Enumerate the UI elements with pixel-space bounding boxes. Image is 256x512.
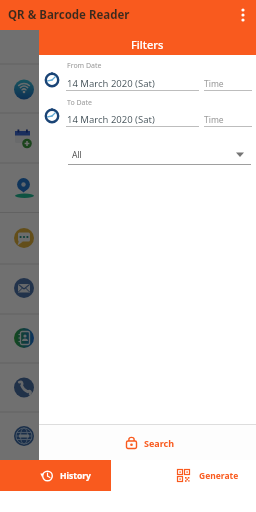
button[interactable]: Search xyxy=(39,425,256,460)
staticText: QR & Barcode Reader xyxy=(8,7,130,23)
button[interactable]: 14 March 2020 (Sat) xyxy=(67,77,155,90)
button[interactable]: All xyxy=(68,143,251,165)
button[interactable]: Generate xyxy=(111,460,256,491)
button[interactable] xyxy=(44,72,60,88)
button[interactable]: Time xyxy=(204,78,224,90)
button[interactable] xyxy=(44,108,60,124)
button[interactable]: Time xyxy=(204,114,224,126)
button[interactable]: 14 March 2020 (Sat) xyxy=(67,113,155,126)
staticText: Filters xyxy=(131,37,164,52)
staticText: To Date xyxy=(67,98,92,108)
button[interactable]: History xyxy=(0,460,111,491)
button[interactable] xyxy=(241,8,245,22)
staticText: Search xyxy=(144,437,175,449)
staticText: From Date xyxy=(67,61,102,71)
staticText: All xyxy=(72,149,82,161)
staticText: History xyxy=(60,470,91,482)
staticText: Generate xyxy=(199,470,239,482)
